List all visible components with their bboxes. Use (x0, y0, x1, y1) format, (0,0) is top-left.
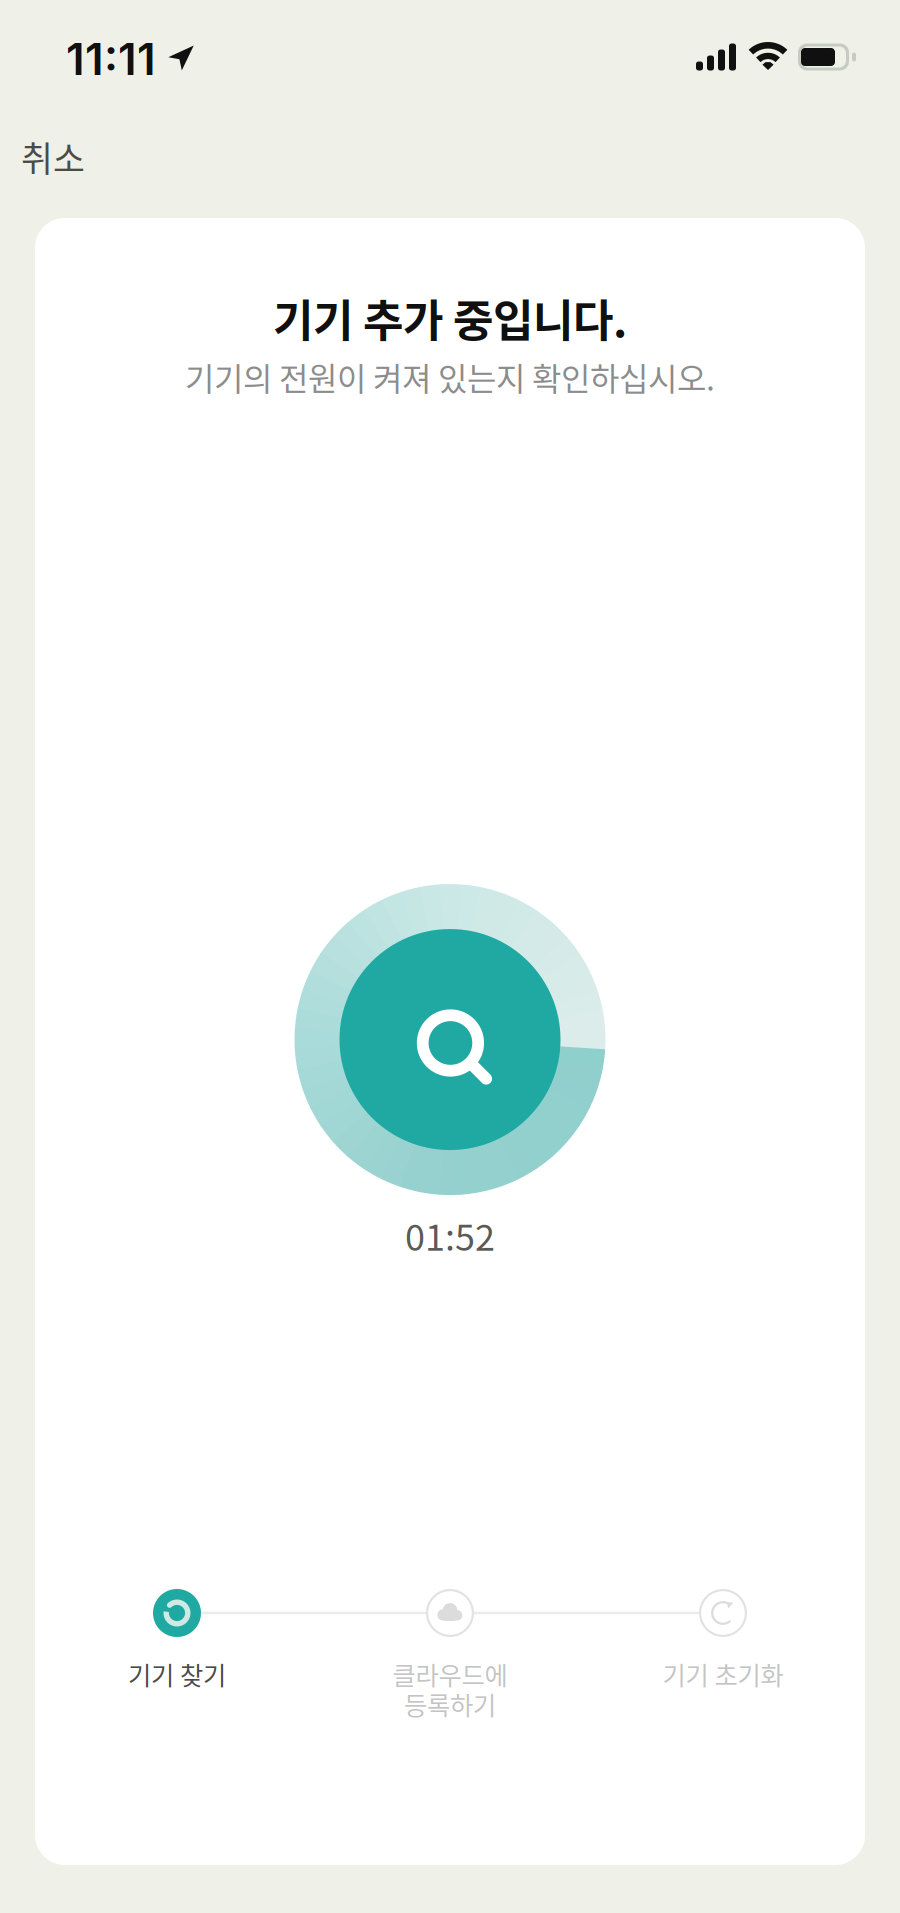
staticText: 등록하기 (404, 1686, 496, 1722)
staticText: 01:52 (405, 1209, 495, 1261)
staticText: 기기의 전원이 켜져 있는지 확인하십시오. (185, 354, 715, 400)
staticText: 취소 (21, 132, 85, 182)
staticText: 11:11 (66, 32, 156, 86)
staticText: 기기 찾기 (128, 1656, 226, 1692)
button[interactable]: 취소 (1, 110, 105, 204)
staticText: 클라우드에 (392, 1656, 507, 1692)
staticText: 기기 추가 중입니다. (273, 286, 627, 350)
staticText: 기기 초기화 (662, 1656, 783, 1692)
